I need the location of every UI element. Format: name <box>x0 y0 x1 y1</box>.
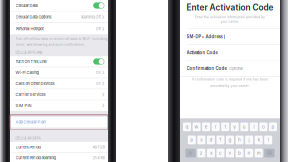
staticText: z <box>200 150 203 156</box>
button[interactable]: c <box>216 149 224 157</box>
staticText: your carrier. <box>220 20 239 23</box>
button[interactable]: j <box>245 136 253 144</box>
staticText: f <box>219 137 221 143</box>
staticText: Off <box>95 70 100 75</box>
button[interactable]: ⇧ <box>185 149 196 157</box>
staticText: n <box>248 150 251 156</box>
staticText: v <box>228 150 231 156</box>
staticText: 49.1 GB <box>92 145 104 149</box>
staticText: q <box>185 124 188 130</box>
staticText: c <box>219 150 222 156</box>
button[interactable]: m <box>255 149 263 157</box>
button[interactable]: q <box>183 122 191 131</box>
staticText: x <box>210 150 212 156</box>
staticText: Activation Code <box>187 50 218 55</box>
button[interactable]: Confirmation Code <box>180 61 280 76</box>
button[interactable]: ⌫ <box>264 149 275 157</box>
staticText: Confirmation Code <box>187 66 227 71</box>
button[interactable]: f <box>216 136 224 144</box>
staticText: Turn On This Line <box>16 59 47 64</box>
button[interactable]: Current Period <box>10 142 108 152</box>
button[interactable]: Turn On This Line <box>10 56 108 67</box>
button[interactable]: y <box>231 122 239 131</box>
staticText: Current Period <box>16 145 41 149</box>
staticText: provided by your carrier. <box>210 84 249 88</box>
button[interactable]: p <box>269 122 277 131</box>
button[interactable]: a <box>188 136 196 144</box>
button[interactable]: b <box>236 149 244 157</box>
button[interactable]: u <box>240 122 248 131</box>
staticText: Turn off cellular data to restrict all d… <box>16 37 108 41</box>
button[interactable]: Cellular Data <box>10 0 108 11</box>
staticText: e <box>205 124 208 130</box>
staticText: Cellular Data <box>16 3 38 8</box>
staticText: d <box>209 137 212 143</box>
staticText: i <box>253 124 254 130</box>
button[interactable]: e <box>202 122 210 131</box>
staticText: ⌫ <box>266 150 272 156</box>
staticText: Calls on Other Devices <box>16 81 55 86</box>
button[interactable]: h <box>236 136 244 144</box>
staticText: s <box>200 137 202 143</box>
staticText: Optional <box>229 66 243 71</box>
button[interactable]: x <box>207 149 215 157</box>
staticText: CELLULAR PLANS <box>16 51 43 54</box>
staticText: Cellular Data Options <box>16 15 52 19</box>
staticText: Wi-Fi Calling <box>16 70 39 75</box>
button[interactable]: Carrier Services <box>10 89 108 100</box>
staticText: h <box>238 137 241 143</box>
button[interactable]: n <box>245 149 253 157</box>
button[interactable]: Current Period Roaming <box>10 153 108 162</box>
staticText: SM-DP+ Address <box>187 34 223 39</box>
staticText: Carrier Services <box>16 92 46 97</box>
staticText: r <box>215 124 217 130</box>
button[interactable]: g <box>226 136 234 144</box>
staticText: p <box>271 124 274 130</box>
staticText: CELLULAR DATA <box>16 136 41 140</box>
button[interactable]: Calls on Other Devices <box>10 78 108 89</box>
button[interactable]: t <box>221 122 229 131</box>
button[interactable]: v <box>226 149 234 157</box>
staticText: Enter the activation information provide… <box>195 15 265 19</box>
button[interactable]: s <box>197 136 205 144</box>
staticText: l <box>268 137 269 143</box>
button[interactable]: l <box>264 136 272 144</box>
button[interactable]: Cellular Data Options <box>10 11 108 23</box>
staticText: Off <box>95 27 100 31</box>
staticText: w <box>195 124 199 130</box>
button[interactable]: i <box>250 122 258 131</box>
button[interactable]: Wi-Fi Calling <box>10 67 108 78</box>
staticText: Roaming Off <box>80 15 100 19</box>
staticText: t <box>225 124 226 130</box>
staticText: m <box>257 150 261 156</box>
staticText: A confirmation code is required if one h… <box>192 78 268 81</box>
button[interactable]: d <box>207 136 215 144</box>
button[interactable]: Personal Hotspot <box>10 23 108 34</box>
button[interactable]: Activation Code <box>180 45 280 60</box>
staticText: g <box>228 137 231 143</box>
button[interactable]: Add Cellular Plan <box>10 117 108 127</box>
staticText: k <box>258 137 260 143</box>
staticText: SIM PIN <box>16 103 32 108</box>
button[interactable]: SM-DP+ Address <box>180 29 280 45</box>
staticText: 25.6 KB <box>92 156 104 160</box>
staticText: Enter Activation Code <box>186 3 273 13</box>
button[interactable]: o <box>259 122 267 131</box>
button[interactable]: r <box>212 122 220 131</box>
staticText: b <box>238 150 241 156</box>
staticText: j <box>249 137 250 143</box>
staticText: Add Cellular Plan <box>16 120 46 125</box>
button[interactable]: z <box>197 149 205 157</box>
staticText: a <box>190 137 193 143</box>
staticText: u <box>243 124 246 130</box>
button[interactable]: w <box>193 122 201 131</box>
staticText: o <box>262 124 265 130</box>
staticText: Current Period Roaming <box>16 155 56 160</box>
staticText: Personal Hotspot <box>16 26 44 31</box>
staticText: email, web browsing and push notificatio… <box>16 43 86 46</box>
button[interactable]: SIM PIN <box>10 100 108 111</box>
staticText: ⇧ <box>188 150 193 156</box>
staticText: y <box>233 124 236 130</box>
button[interactable]: k <box>255 136 263 144</box>
staticText: Off <box>95 81 100 86</box>
